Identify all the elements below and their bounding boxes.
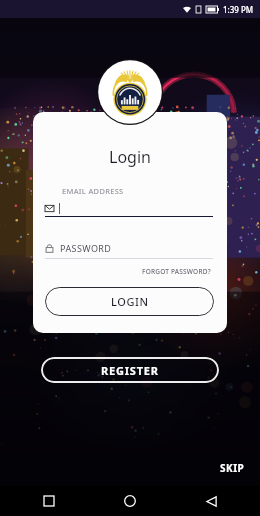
button[interactable]: Recent apps	[36, 488, 62, 514]
staticText: PASSWORD	[60, 242, 112, 254]
staticText: LOGIN	[111, 294, 149, 309]
button[interactable]: SKIP	[216, 457, 249, 479]
staticText: FORGOT PASSWORD?	[142, 267, 211, 276]
button[interactable]: REGISTER	[41, 357, 219, 383]
button[interactable]: Back	[198, 488, 224, 514]
staticText: 1:39 PM	[223, 4, 254, 15]
button[interactable]: FORGOT PASSWORD?	[140, 265, 213, 278]
staticText: EMAIL ADDRESS	[62, 186, 124, 196]
staticText: REGISTER	[101, 363, 159, 378]
button[interactable]: LOGIN	[45, 287, 214, 316]
button[interactable]: Home	[117, 488, 143, 514]
staticText: Login	[109, 146, 151, 168]
staticText: SKIP	[220, 461, 245, 475]
